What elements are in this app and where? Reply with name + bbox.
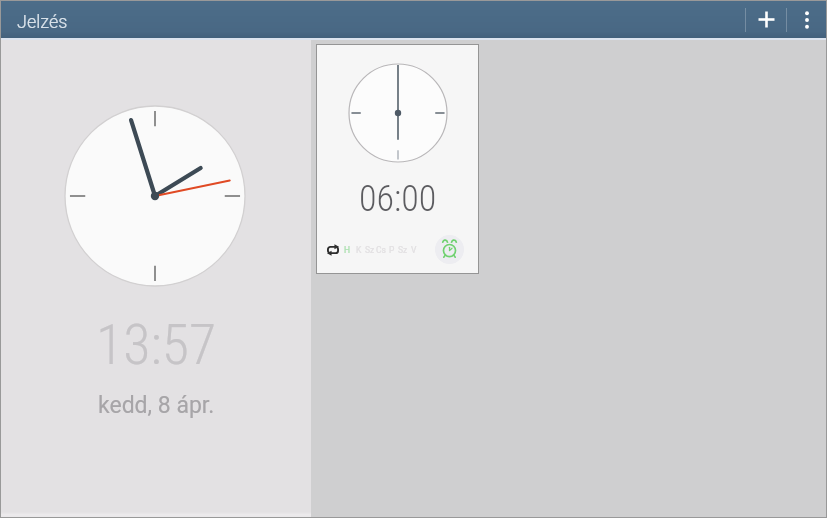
staticText: H bbox=[344, 245, 351, 255]
staticText: Sz bbox=[398, 245, 408, 255]
button[interactable]: Alarm on bbox=[435, 235, 464, 264]
staticText: Cs bbox=[376, 245, 386, 255]
button[interactable]: More options bbox=[787, 1, 826, 38]
staticText: K bbox=[356, 245, 362, 255]
staticText: P bbox=[389, 245, 395, 255]
staticText: Jelzés bbox=[17, 11, 68, 32]
staticText: Sz bbox=[365, 245, 375, 255]
staticText: 13:57 bbox=[96, 312, 217, 378]
button[interactable]: Add alarm bbox=[746, 1, 786, 38]
staticText: 06:00 bbox=[359, 178, 437, 220]
staticText: kedd, 8 ápr. bbox=[98, 392, 215, 419]
button[interactable]: 06:00 bbox=[317, 45, 478, 273]
staticText: V bbox=[411, 245, 417, 255]
